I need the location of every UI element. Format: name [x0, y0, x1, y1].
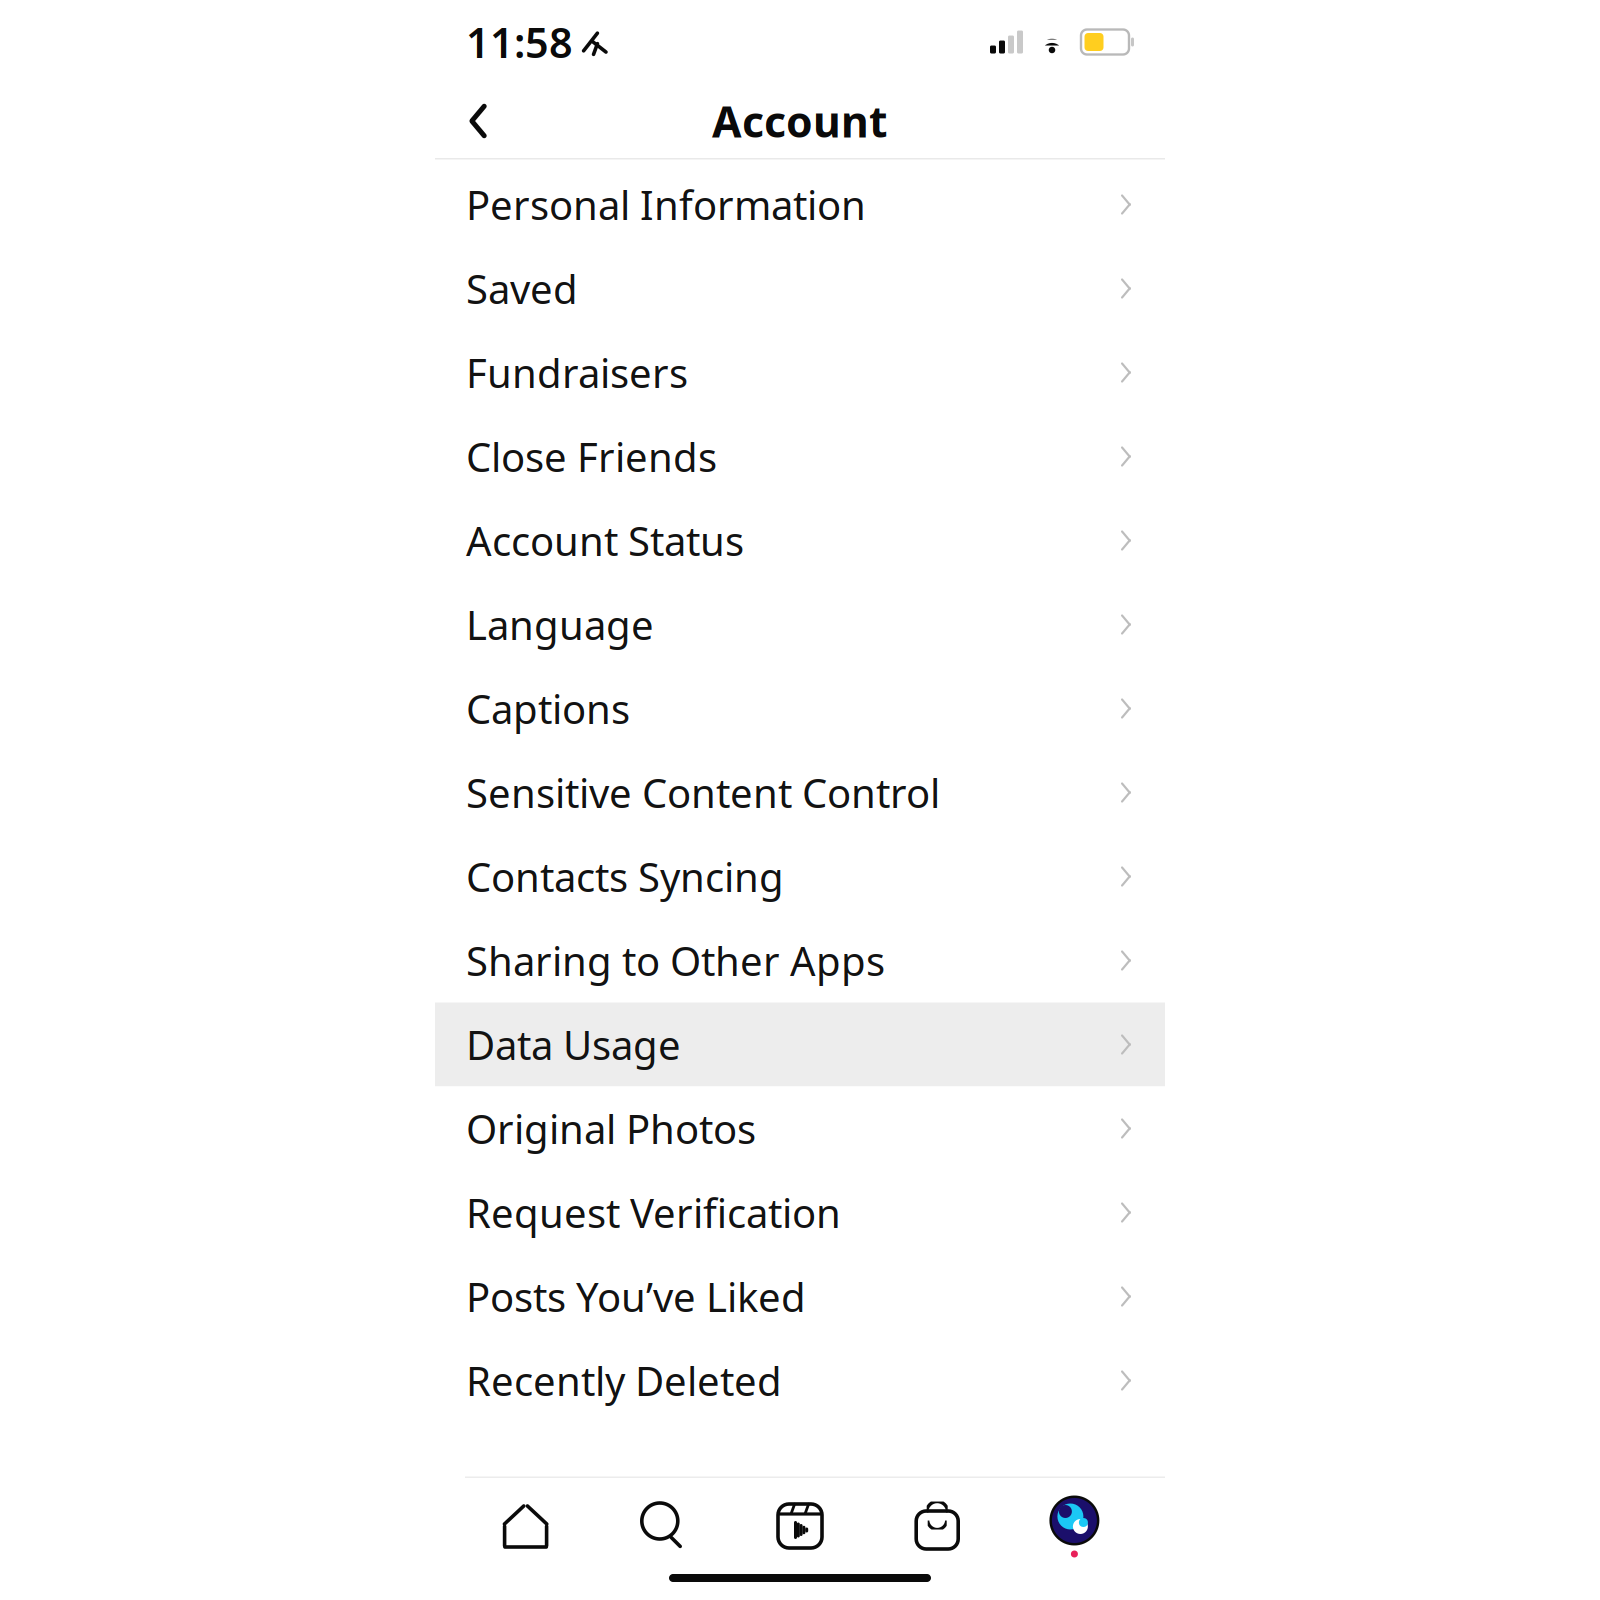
staticText: 11:58 — [466, 15, 573, 69]
button[interactable]: Back — [449, 84, 507, 158]
button[interactable]: Posts You’ve Liked — [435, 1254, 1165, 1338]
button[interactable]: Sharing to Other Apps — [435, 918, 1165, 1002]
button[interactable]: Shop — [869, 1478, 1006, 1574]
staticText: Account — [712, 93, 888, 149]
staticText: Close Friends — [466, 430, 717, 483]
button[interactable]: Search — [594, 1478, 731, 1574]
button[interactable]: Sensitive Content Control — [435, 750, 1165, 834]
button[interactable]: Data Usage — [435, 1002, 1165, 1086]
staticText: Original Photos — [466, 1102, 756, 1155]
staticText: Saved — [466, 262, 578, 315]
staticText: Account Status — [466, 514, 744, 567]
staticText: Sharing to Other Apps — [466, 934, 885, 987]
button[interactable]: Contacts Syncing — [435, 834, 1165, 918]
staticText: Posts You’ve Liked — [466, 1270, 806, 1323]
staticText: Contacts Syncing — [466, 850, 784, 903]
button[interactable]: Fundraisers — [435, 330, 1165, 414]
button[interactable]: Saved — [435, 246, 1165, 330]
staticText: Request Verification — [466, 1186, 841, 1239]
button[interactable]: Original Photos — [435, 1086, 1165, 1170]
staticText: Data Usage — [466, 1018, 681, 1071]
button[interactable]: Request Verification — [435, 1170, 1165, 1254]
button[interactable]: Recently Deleted — [435, 1338, 1165, 1422]
staticText: Language — [466, 598, 654, 651]
button[interactable]: Profile — [1006, 1478, 1143, 1574]
button[interactable]: Language — [435, 582, 1165, 666]
button[interactable]: Personal Information — [435, 162, 1165, 246]
button[interactable]: Reels — [731, 1478, 869, 1574]
button[interactable]: Home — [457, 1478, 594, 1574]
staticText: Fundraisers — [466, 346, 688, 399]
staticText: Recently Deleted — [466, 1354, 782, 1407]
button[interactable]: Account Status — [435, 498, 1165, 582]
staticText: Captions — [466, 682, 630, 735]
staticText: Sensitive Content Control — [466, 766, 940, 819]
button[interactable]: Captions — [435, 666, 1165, 750]
button[interactable]: Close Friends — [435, 414, 1165, 498]
staticText: Personal Information — [466, 178, 866, 231]
